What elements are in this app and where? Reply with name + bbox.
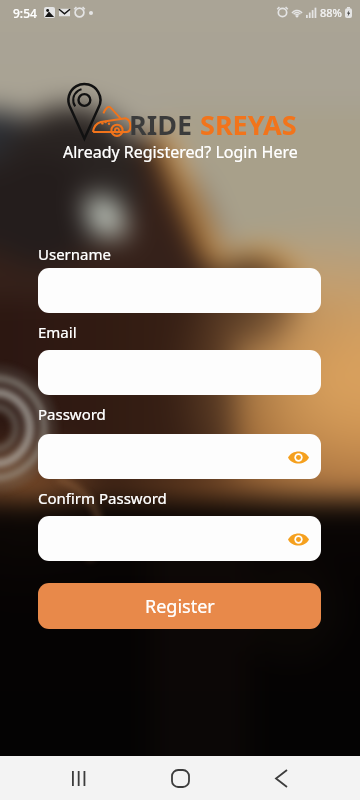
staticText: Already Registered? Login Here [63, 141, 298, 163]
staticText: Confirm Password [38, 488, 167, 508]
button[interactable]: Show password [287, 528, 309, 550]
button[interactable]: Register [38, 583, 321, 629]
staticText: SREYAS [200, 106, 297, 143]
staticText: Email [38, 322, 77, 342]
button[interactable]: Home [158, 756, 202, 800]
button[interactable]: Show password [287, 446, 309, 468]
staticText: 9:54 [13, 5, 37, 21]
button[interactable]: Show password [38, 516, 321, 561]
button[interactable]: Show password [38, 434, 321, 479]
staticText: Username [38, 244, 111, 264]
button[interactable] [38, 350, 321, 395]
staticText: Register [145, 594, 215, 619]
button[interactable]: Recents [57, 756, 101, 800]
staticText: 88% [320, 5, 342, 20]
button[interactable]: Already Registered? Login Here [0, 141, 360, 163]
staticText: Password [38, 404, 106, 424]
button[interactable]: Back [259, 756, 303, 800]
staticText: RIDE [129, 106, 200, 143]
button[interactable] [38, 268, 321, 313]
